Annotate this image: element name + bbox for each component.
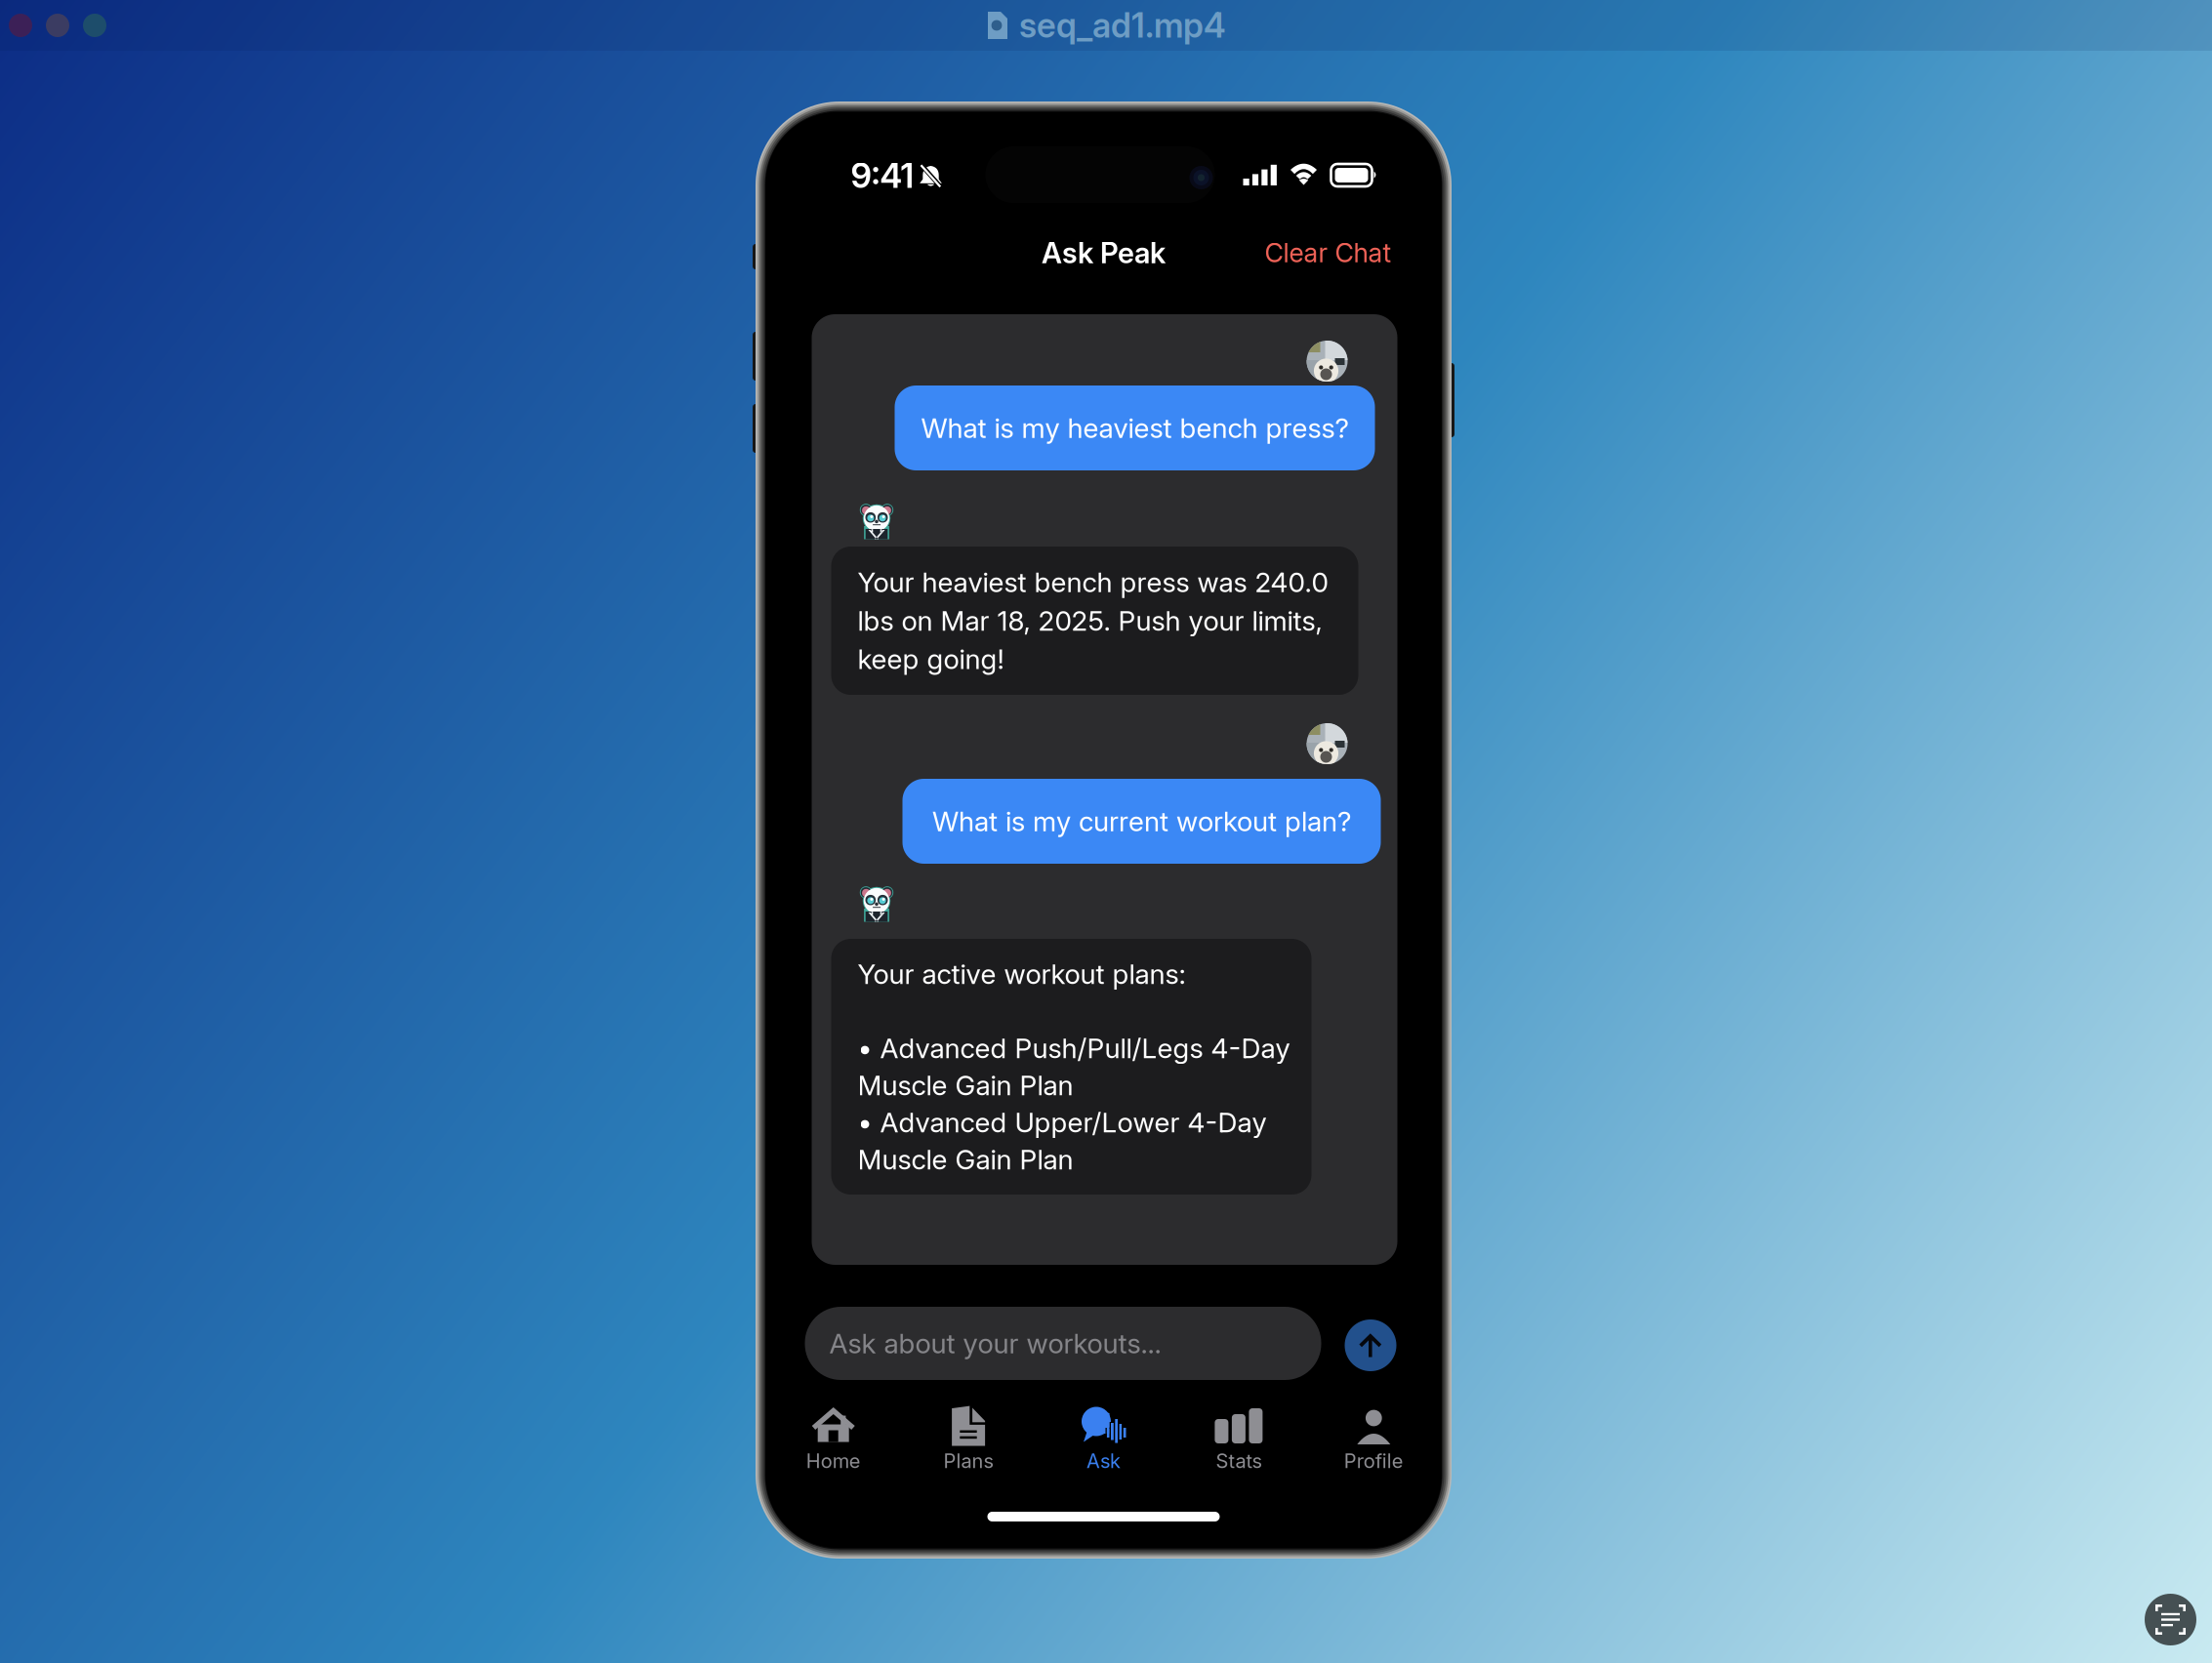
staticText: Ask [1086, 1449, 1121, 1473]
staticText: Ask Peak [1042, 235, 1166, 270]
button[interactable]: Plans [901, 1405, 1036, 1476]
staticText: Plans [944, 1449, 993, 1473]
staticText: Profile [1344, 1449, 1404, 1473]
staticText: Your active workout plans: [858, 957, 1186, 991]
staticText: keep going! [858, 643, 1004, 676]
staticText: Home [806, 1449, 861, 1473]
staticText: Ask about your workouts... [829, 1327, 1161, 1360]
button[interactable]: Ask about your workouts... [805, 1307, 1321, 1380]
staticText: 9:41 [851, 155, 914, 196]
button[interactable]: Profile [1306, 1405, 1441, 1476]
staticText: Muscle Gain Plan [858, 1069, 1073, 1102]
staticText: Your heaviest bench press was 240.0 [858, 566, 1328, 599]
button[interactable]: Clear Chat [1251, 230, 1405, 275]
button[interactable]: Ask [1036, 1405, 1171, 1476]
staticText: • Advanced Upper/Lower 4-Day [858, 1106, 1267, 1139]
button[interactable]: Live Text [2145, 1594, 2196, 1645]
staticText: Clear Chat [1265, 237, 1392, 269]
button[interactable]: Home [766, 1405, 901, 1476]
button[interactable]: Stats [1171, 1405, 1306, 1476]
staticText: • Advanced Push/Pull/Legs 4-Day [858, 1032, 1290, 1065]
staticText: What is my current workout plan? [932, 805, 1351, 838]
staticText: What is my heaviest bench press? [921, 411, 1349, 445]
button[interactable]: Send [1345, 1319, 1396, 1371]
staticText: lbs on Mar 18, 2025. Push your limits, [858, 604, 1322, 637]
staticText: Muscle Gain Plan [858, 1143, 1073, 1176]
staticText: Stats [1216, 1449, 1262, 1473]
staticText: seq_ad1.mp4 [1019, 5, 1226, 46]
